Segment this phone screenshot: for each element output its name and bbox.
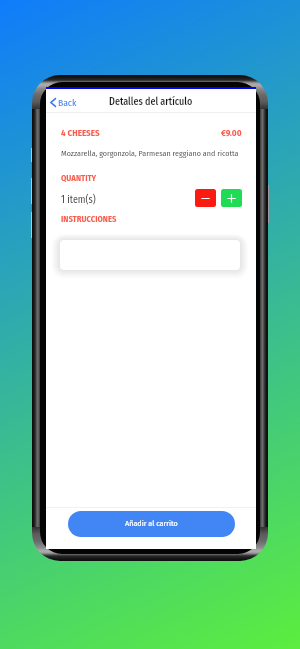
staticText: INSTRUCCIONES bbox=[61, 214, 117, 224]
staticText: Añadir al carrito bbox=[125, 519, 178, 529]
staticText: QUANTITY bbox=[61, 173, 97, 183]
button[interactable]: Añadir al carrito bbox=[68, 511, 235, 537]
staticText: 4 CHEESES bbox=[61, 128, 100, 139]
staticText: €9.00 bbox=[221, 128, 244, 139]
staticText: Mozzarella, gorgonzola, Parmesan reggian… bbox=[61, 149, 239, 159]
staticText: Detalles del artículo bbox=[109, 96, 193, 108]
staticText: Back bbox=[58, 97, 77, 108]
staticText: 1 item(s) bbox=[61, 194, 96, 206]
button[interactable]: Decrease quantity bbox=[195, 189, 216, 207]
button[interactable]: Back bbox=[48, 95, 79, 110]
button[interactable]: Increase quantity bbox=[221, 189, 242, 207]
